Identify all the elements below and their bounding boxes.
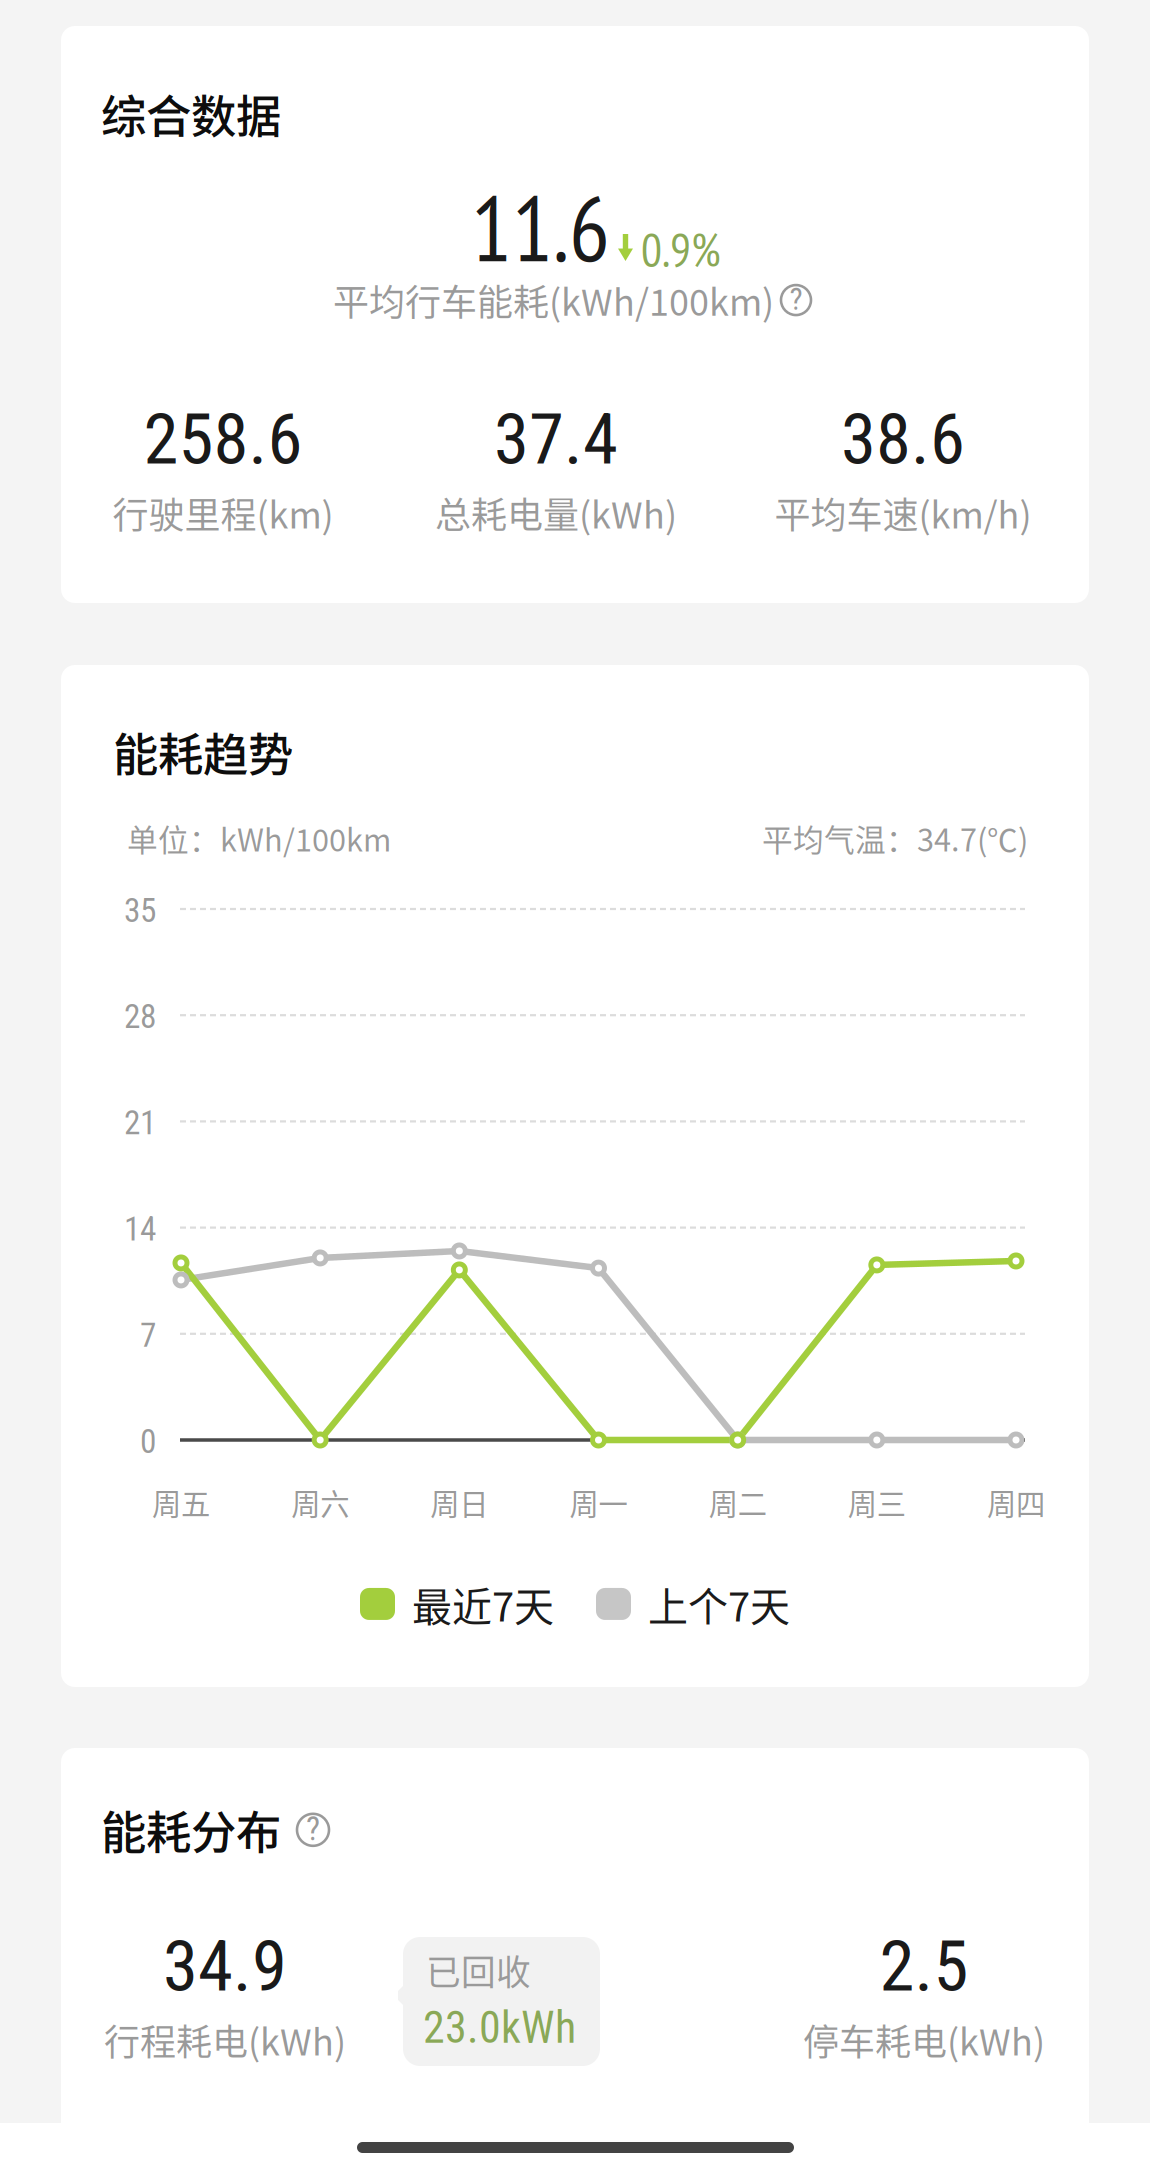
staticText: 0: [140, 1422, 156, 1461]
staticText: 能耗分布: [101, 1797, 281, 1863]
staticText: 综合数据: [101, 81, 281, 147]
staticText: 周日: [430, 1481, 488, 1523]
staticText: 周五: [152, 1481, 210, 1523]
staticText: 11.6: [471, 169, 610, 286]
staticText: 21: [124, 1103, 156, 1142]
staticText: 能耗趋势: [113, 719, 293, 785]
staticText: 258.6: [143, 398, 302, 481]
staticText: 行程耗电(kWh): [104, 2014, 346, 2066]
staticText: 最近7天: [412, 1575, 554, 1633]
staticText: 2.5: [879, 1925, 968, 2008]
staticText: 平均气温：34.7(℃): [762, 816, 1028, 860]
staticText: 平均车速(km/h): [774, 487, 1031, 539]
staticText: 34.9: [163, 1925, 287, 2008]
staticText: 单位：kWh/100km: [127, 816, 391, 860]
staticText: 37.4: [494, 398, 618, 481]
staticText: 周三: [848, 1481, 906, 1523]
staticText: 23.0kWh: [423, 2002, 576, 2054]
staticText: 周二: [709, 1481, 767, 1523]
staticText: 平均行车能耗(kWh/100km): [333, 274, 774, 326]
staticText: 14: [124, 1210, 156, 1249]
staticText: ?: [789, 281, 802, 317]
staticText: 周六: [291, 1481, 349, 1523]
staticText: 周四: [987, 1481, 1045, 1523]
staticText: ?: [306, 1809, 320, 1848]
staticText: 35: [124, 891, 156, 930]
button[interactable]: 关于平均行车能耗: [781, 285, 811, 315]
staticText: 7: [140, 1316, 156, 1355]
staticText: 停车耗电(kWh): [803, 2014, 1045, 2066]
staticText: 行驶里程(km): [112, 487, 333, 539]
button[interactable]: 最近7天: [360, 1575, 554, 1633]
staticText: 已回收: [426, 1945, 531, 1995]
staticText: 28: [124, 997, 156, 1036]
staticText: 38.6: [841, 398, 965, 481]
staticText: 周一: [569, 1481, 627, 1523]
staticText: 上个7天: [648, 1575, 790, 1633]
staticText: 0.9%: [641, 219, 721, 279]
button[interactable]: 上个7天: [596, 1575, 790, 1633]
staticText: 总耗电量(kWh): [435, 487, 677, 539]
button[interactable]: 关于能耗分布: [297, 1814, 329, 1846]
